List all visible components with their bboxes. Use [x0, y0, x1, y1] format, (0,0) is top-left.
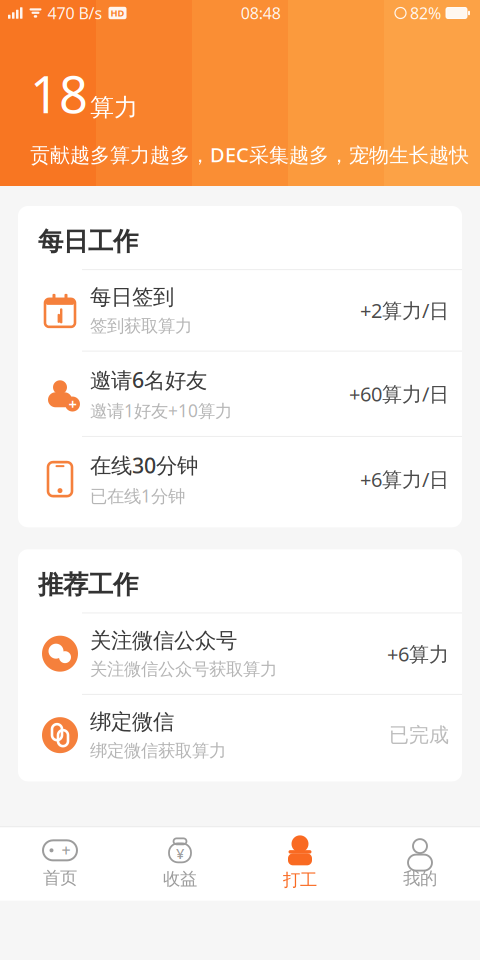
- staticText: ¥: [176, 844, 184, 863]
- staticText: +: [61, 840, 70, 861]
- staticText: 打工: [283, 869, 317, 891]
- staticText: 470 B/s: [47, 2, 102, 24]
- button[interactable]: 在线30分钟: [18, 436, 462, 521]
- staticText: 08:48: [241, 2, 281, 24]
- staticText: 贡献越多算力越多，DEC采集越多，宠物生长越快: [30, 141, 469, 168]
- staticText: 82%: [410, 2, 441, 24]
- button[interactable]: 每日签到: [18, 269, 462, 351]
- staticText: 算力: [90, 93, 138, 122]
- staticText: +6算力/日: [360, 466, 449, 492]
- button[interactable]: 打工: [240, 827, 360, 901]
- staticText: +: [68, 394, 76, 414]
- staticText: HD: [110, 7, 124, 19]
- button[interactable]: 绑定微信: [18, 694, 462, 775]
- staticText: 收益: [163, 868, 197, 890]
- staticText: 绑定微信获取算力: [90, 740, 226, 761]
- staticText: 推荐工作: [38, 569, 138, 600]
- staticText: 已完成: [389, 723, 449, 747]
- staticText: 每日签到: [90, 284, 174, 310]
- staticText: 首页: [43, 867, 77, 889]
- staticText: +2算力/日: [360, 297, 449, 324]
- button[interactable]: +: [18, 351, 462, 436]
- staticText: 每日工作: [38, 226, 138, 257]
- button[interactable]: 关注微信公众号: [18, 612, 462, 694]
- staticText: 我的: [403, 868, 437, 889]
- staticText: 绑定微信: [90, 709, 174, 735]
- staticText: 邀请6名好友: [90, 366, 207, 394]
- staticText: +6算力: [387, 640, 449, 667]
- button[interactable]: +: [0, 829, 120, 899]
- button[interactable]: 我的: [360, 829, 480, 899]
- staticText: 18: [30, 60, 88, 127]
- staticText: +60算力/日: [349, 380, 449, 407]
- staticText: 邀请1好友+10算力: [90, 399, 232, 422]
- button[interactable]: ¥: [120, 828, 240, 900]
- staticText: 关注微信公众号: [90, 627, 237, 654]
- staticText: 在线30分钟: [90, 451, 198, 479]
- staticText: 关注微信公众号获取算力: [90, 659, 277, 680]
- staticText: 签到获取算力: [90, 315, 192, 337]
- staticText: 已在线1分钟: [90, 484, 185, 507]
